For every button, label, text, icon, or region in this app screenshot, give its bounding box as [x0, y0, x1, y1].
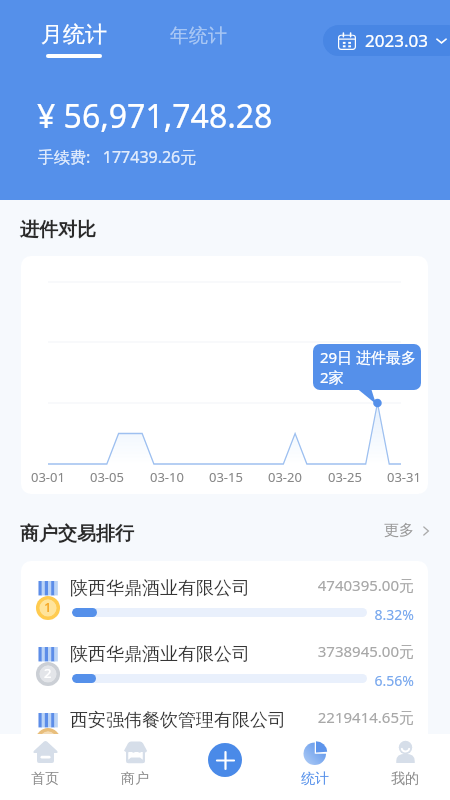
staticText: 3.90% [21, 737, 414, 756]
staticText: 年统计 [170, 24, 227, 48]
button[interactable]: 2023.03 [323, 25, 450, 56]
staticText: 更多 [384, 521, 414, 540]
staticText: 统计 [301, 770, 329, 788]
staticText: 6.56% [21, 671, 414, 690]
staticText: 03-01 [31, 468, 65, 486]
button[interactable]: 统计 [270, 734, 360, 800]
button[interactable]: Add [208, 743, 242, 777]
button[interactable]: 2 [21, 627, 428, 693]
staticText: 2023.03 [365, 29, 428, 52]
button[interactable]: 月统计 [41, 21, 107, 58]
button[interactable]: 年统计 [170, 24, 227, 48]
staticText: 西安强伟餐饮管理有限公司 [70, 709, 286, 732]
staticText: 进件对比 [20, 218, 96, 242]
staticText: 1 [44, 598, 52, 616]
staticText: 4740395.00元 [21, 575, 414, 595]
button[interactable]: 首页 [0, 734, 90, 800]
staticText: 3738945.00元 [21, 641, 414, 661]
button[interactable]: 3 [21, 693, 428, 759]
staticText: 我的 [391, 770, 419, 788]
staticText: 月统计 [41, 21, 107, 49]
staticText: 3 [44, 730, 52, 748]
staticText: 陕西华鼎酒业有限公司 [70, 577, 250, 600]
staticText: 2家 [320, 367, 344, 387]
staticText: 首页 [31, 770, 59, 788]
staticText: 手续费: 177439.26元 [38, 146, 197, 168]
staticText: 03-31 [387, 468, 421, 486]
staticText: 2219414.65元 [21, 707, 414, 727]
staticText: 29日 进件最多 [320, 347, 417, 367]
staticText: 陕西华鼎酒业有限公司 [70, 643, 250, 666]
button[interactable]: 我的 [360, 734, 450, 800]
button[interactable]: 更多 [384, 521, 432, 540]
staticText: 03-05 [90, 468, 124, 486]
staticText: 03-20 [268, 468, 302, 486]
staticText: 2 [44, 664, 52, 682]
staticText: 8.32% [21, 605, 414, 624]
button[interactable]: 商户 [90, 734, 180, 800]
staticText: 03-25 [328, 468, 362, 486]
staticText: 03-10 [150, 468, 184, 486]
button[interactable]: 1 [21, 561, 428, 627]
staticText: 商户 [121, 770, 149, 788]
staticText: 商户交易排行 [20, 522, 134, 546]
staticText: 03-15 [209, 468, 243, 486]
staticText: ¥ 56,971,748.28 [37, 94, 273, 138]
